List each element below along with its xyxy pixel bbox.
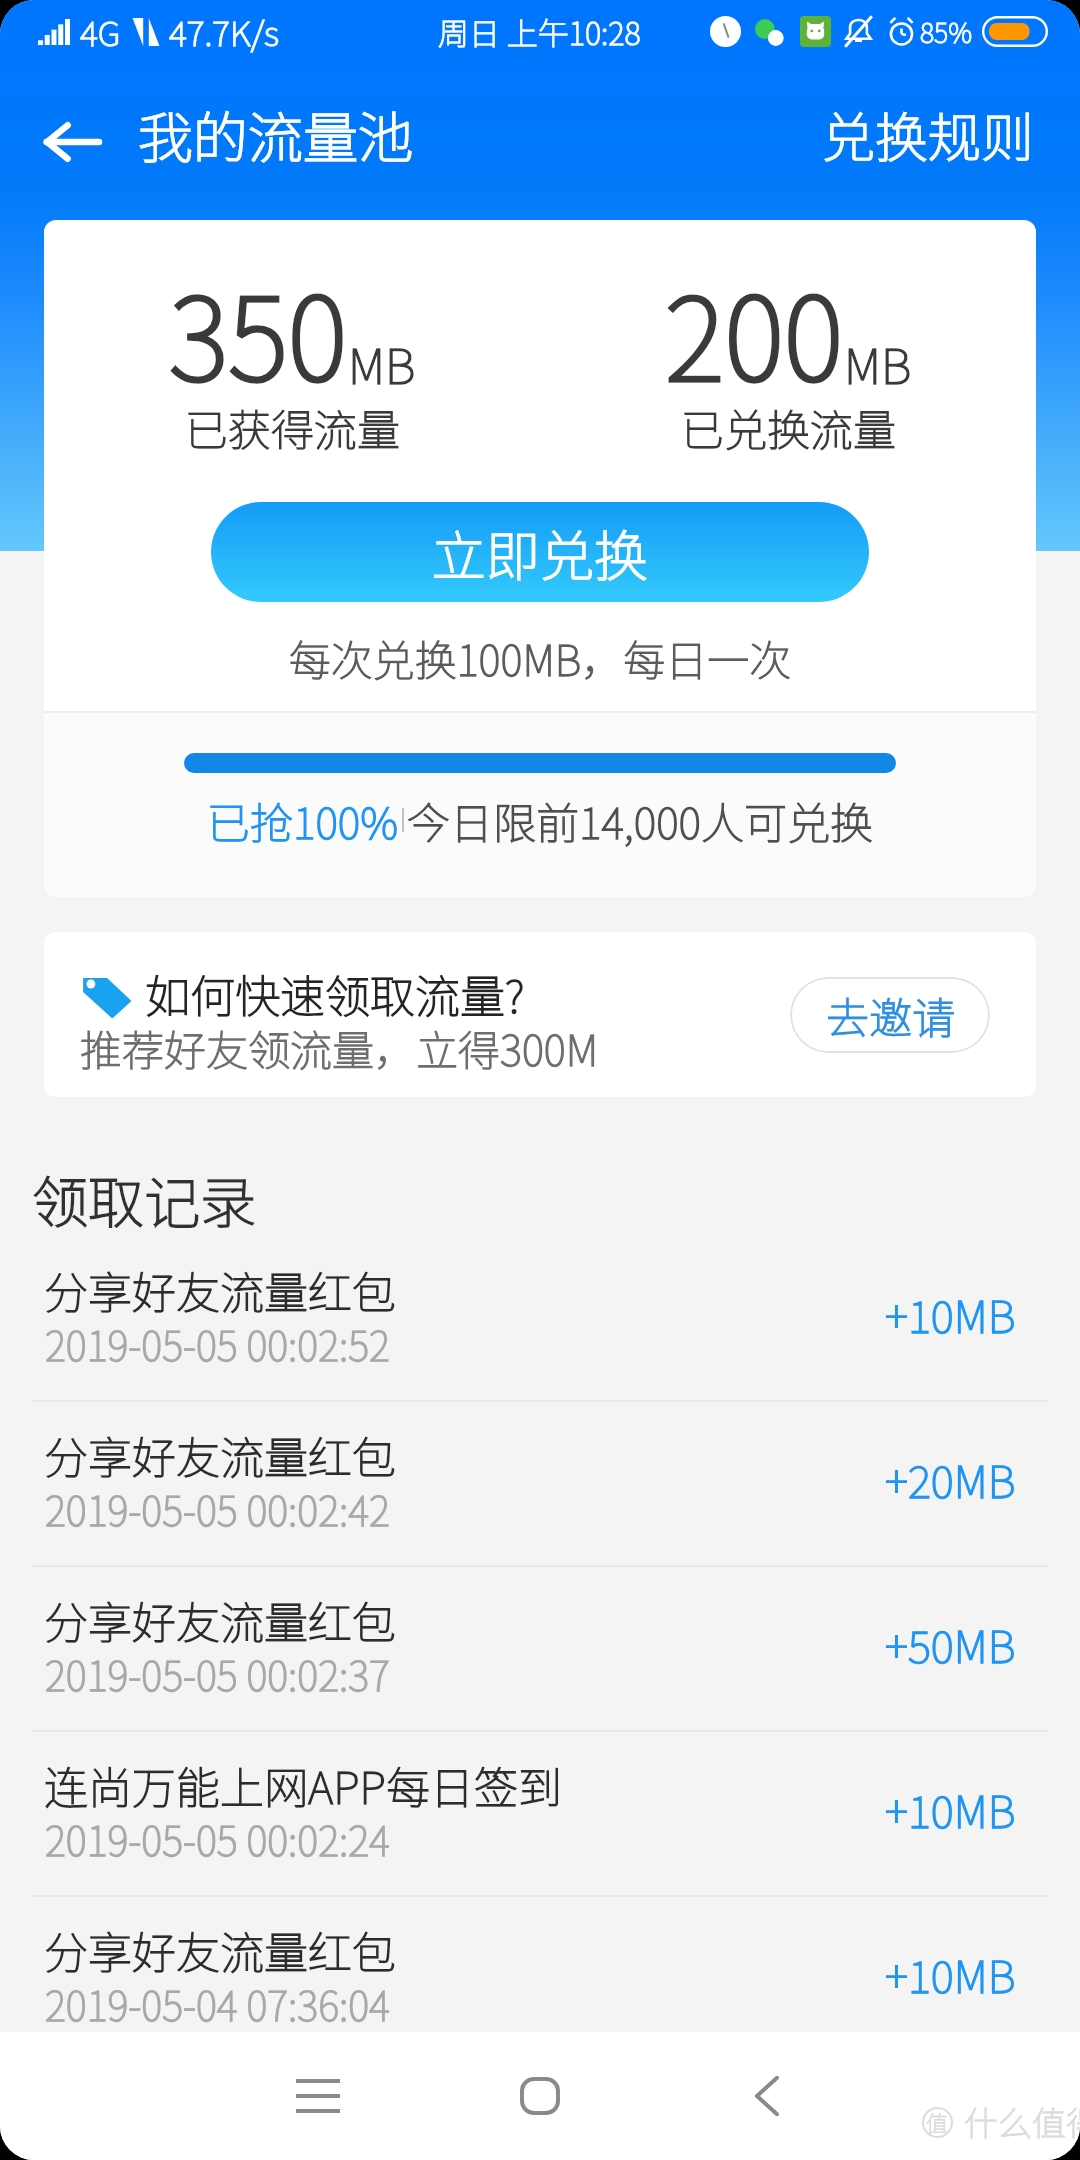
staticText: 立即兑换 <box>432 513 648 591</box>
button[interactable]: Back <box>17 87 127 197</box>
staticText: MB <box>348 328 416 398</box>
staticText: 我的流量池 <box>138 94 414 174</box>
staticText: 去邀请 <box>826 984 955 1046</box>
button[interactable]: 兑换规则 <box>792 73 1080 190</box>
staticText: 今日限前14,000人可兑换 <box>407 789 873 851</box>
staticText: 2019-05-05 00:02:42 <box>45 1480 390 1538</box>
staticText: 2019-05-05 00:02:24 <box>45 1810 390 1868</box>
staticText: +10MB <box>885 1942 1016 2006</box>
button[interactable]: 立即兑换 <box>211 502 869 602</box>
staticText: 推荐好友领流量，立得300M <box>80 1017 598 1078</box>
button[interactable]: Recent apps <box>248 2032 388 2160</box>
staticText: 分享好友流量红包 <box>44 1918 396 1982</box>
staticText: 值 <box>926 2106 949 2138</box>
staticText: 2019-05-05 00:02:52 <box>45 1315 390 1373</box>
staticText: 4G <box>80 7 121 56</box>
staticText: 200 <box>665 249 844 414</box>
button[interactable]: 分享好友流量红包 <box>0 1897 1080 2062</box>
staticText: 已兑换流量 <box>681 396 896 458</box>
staticText: 领取记录 <box>32 1158 256 1239</box>
staticText: 47.7K/s <box>169 7 280 56</box>
button[interactable]: 去邀请 <box>790 977 990 1053</box>
staticText: 分享好友流量红包 <box>44 1258 396 1322</box>
staticText: 已获得流量 <box>185 396 400 458</box>
button[interactable]: 分享好友流量红包 <box>0 1402 1080 1567</box>
staticText: 85% <box>920 12 972 51</box>
button[interactable]: 分享好友流量红包 <box>0 1567 1080 1732</box>
staticText: 如何快速领取流量? <box>145 961 525 1026</box>
staticText: 周日 上午10:28 <box>438 9 641 54</box>
staticText: 什么值得买 <box>964 2097 1080 2146</box>
staticText: 已抢100% <box>207 789 399 851</box>
staticText: 分享好友流量红包 <box>44 1588 396 1652</box>
staticText: 连尚万能上网APP每日签到 <box>44 1753 562 1817</box>
staticText: +50MB <box>885 1612 1016 1676</box>
staticText: 分享好友流量红包 <box>44 1423 396 1487</box>
staticText: 2019-05-04 07:36:04 <box>45 1975 390 2033</box>
button[interactable]: Home <box>470 2032 610 2160</box>
staticText: 每次兑换100MB，每日一次 <box>44 627 1036 688</box>
staticText: 兑换规则 <box>822 96 1034 173</box>
button[interactable]: Back <box>697 2032 837 2160</box>
staticText: MB <box>844 328 912 398</box>
staticText: +10MB <box>885 1777 1016 1841</box>
staticText: +20MB <box>885 1447 1016 1511</box>
staticText: +10MB <box>885 1282 1016 1346</box>
staticText: 350 <box>169 249 348 414</box>
button[interactable]: 连尚万能上网APP每日签到 <box>0 1732 1080 1897</box>
staticText: 2019-05-05 00:02:37 <box>45 1645 390 1703</box>
button[interactable]: 分享好友流量红包 <box>0 1237 1080 1402</box>
